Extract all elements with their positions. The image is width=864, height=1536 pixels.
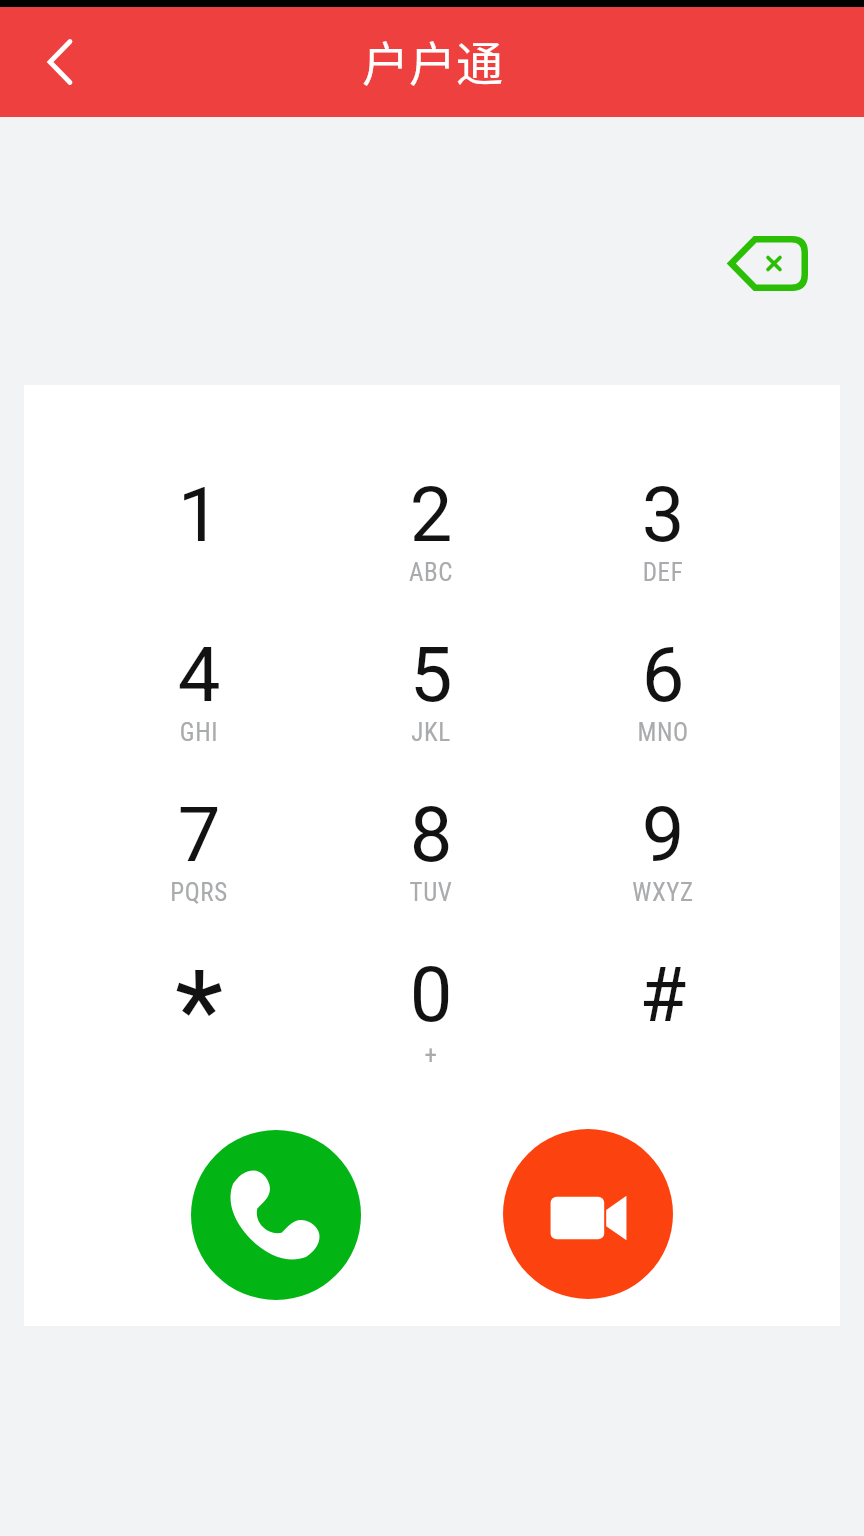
staticText: PQRS [83,878,315,907]
button[interactable]: Backspace [728,236,808,291]
button[interactable]: Video call [503,1129,673,1299]
staticText: 9 [547,790,779,879]
staticText: GHI [83,718,315,747]
staticText: DEF [547,558,779,587]
staticText: * [83,945,315,1076]
staticText: + [315,1041,547,1070]
staticText: WXYZ [547,878,779,907]
staticText: ABC [315,558,547,587]
staticText: # [547,950,779,1039]
button[interactable]: 3 [547,448,779,608]
button[interactable]: 9 [547,768,779,928]
button[interactable]: # [547,928,779,1088]
staticText: 2 [315,470,547,559]
staticText: 5 [315,630,547,719]
staticText: 6 [547,630,779,719]
button[interactable]: 6 [547,608,779,768]
button[interactable]: 2 [315,448,547,608]
button[interactable]: Back [20,22,100,102]
button[interactable]: 1 [83,448,315,608]
staticText: MNO [547,718,779,747]
staticText: JKL [315,718,547,747]
staticText: TUV [315,878,547,907]
button[interactable]: * [83,928,315,1088]
button[interactable]: 4 [83,608,315,768]
staticText: 4 [83,630,315,719]
button[interactable]: 5 [315,608,547,768]
staticText: 7 [83,790,315,879]
staticText: 0 [315,950,547,1039]
staticText: 户户通 [362,26,503,94]
staticText: 3 [547,470,779,559]
staticText: 8 [315,790,547,879]
button[interactable]: 8 [315,768,547,928]
button[interactable]: 0 [315,928,547,1088]
staticText: 1 [83,470,315,559]
button[interactable]: Call [191,1130,361,1300]
button[interactable]: 7 [83,768,315,928]
